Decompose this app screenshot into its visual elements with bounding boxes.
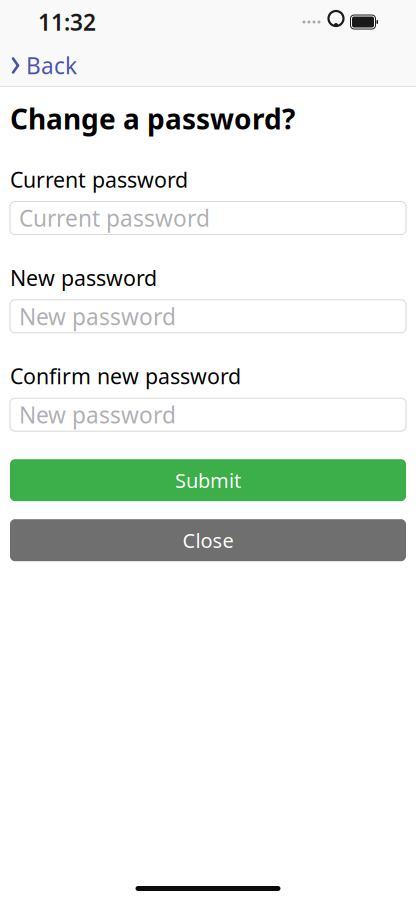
button[interactable]: New password (10, 300, 406, 333)
staticText: New password (19, 301, 176, 331)
button[interactable]: New password (10, 398, 406, 431)
staticText: Change a password? (10, 100, 295, 137)
staticText: Current password (19, 203, 210, 233)
staticText: New password (10, 263, 157, 292)
staticText: Confirm new password (10, 362, 241, 390)
button[interactable]: Submit (10, 459, 406, 501)
button[interactable]: Back (0, 42, 87, 88)
staticText: 11:32 (38, 7, 96, 37)
staticText: Back (26, 50, 77, 80)
staticText: Submit (175, 467, 241, 493)
staticText: Current password (10, 165, 188, 193)
button[interactable]: Current password (10, 201, 406, 234)
staticText: Close (182, 527, 233, 553)
button[interactable]: Close (10, 519, 406, 561)
staticText: New password (19, 400, 176, 430)
